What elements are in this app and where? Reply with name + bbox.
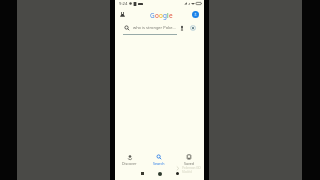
staticText: Saved xyxy=(184,161,195,166)
staticText: G xyxy=(150,11,155,20)
button[interactable]: Discover xyxy=(115,154,144,167)
staticText: l xyxy=(167,11,169,20)
staticText: Discover xyxy=(122,161,137,166)
staticText: Madrid xyxy=(182,170,193,174)
button[interactable]: Google Lens xyxy=(190,25,196,31)
button[interactable]: Back xyxy=(169,169,186,178)
staticText: g xyxy=(163,11,167,20)
button[interactable]: Recent apps xyxy=(134,169,151,178)
button[interactable]: Labs xyxy=(118,10,127,19)
button[interactable]: Saved xyxy=(174,154,204,167)
button[interactable]: Account xyxy=(192,11,199,18)
staticText: e xyxy=(169,11,173,20)
button[interactable]: Search xyxy=(144,154,174,167)
staticText: o xyxy=(159,11,163,20)
button[interactable]: Home xyxy=(151,169,169,178)
staticText: 9:24 xyxy=(119,1,128,7)
staticText: Search xyxy=(153,161,165,166)
button[interactable]: Voice search xyxy=(179,25,185,31)
staticText: who is stronger Poke… xyxy=(133,25,176,30)
staticText: Pokemon GO Fest xyxy=(182,166,203,170)
staticText: o xyxy=(155,11,159,20)
